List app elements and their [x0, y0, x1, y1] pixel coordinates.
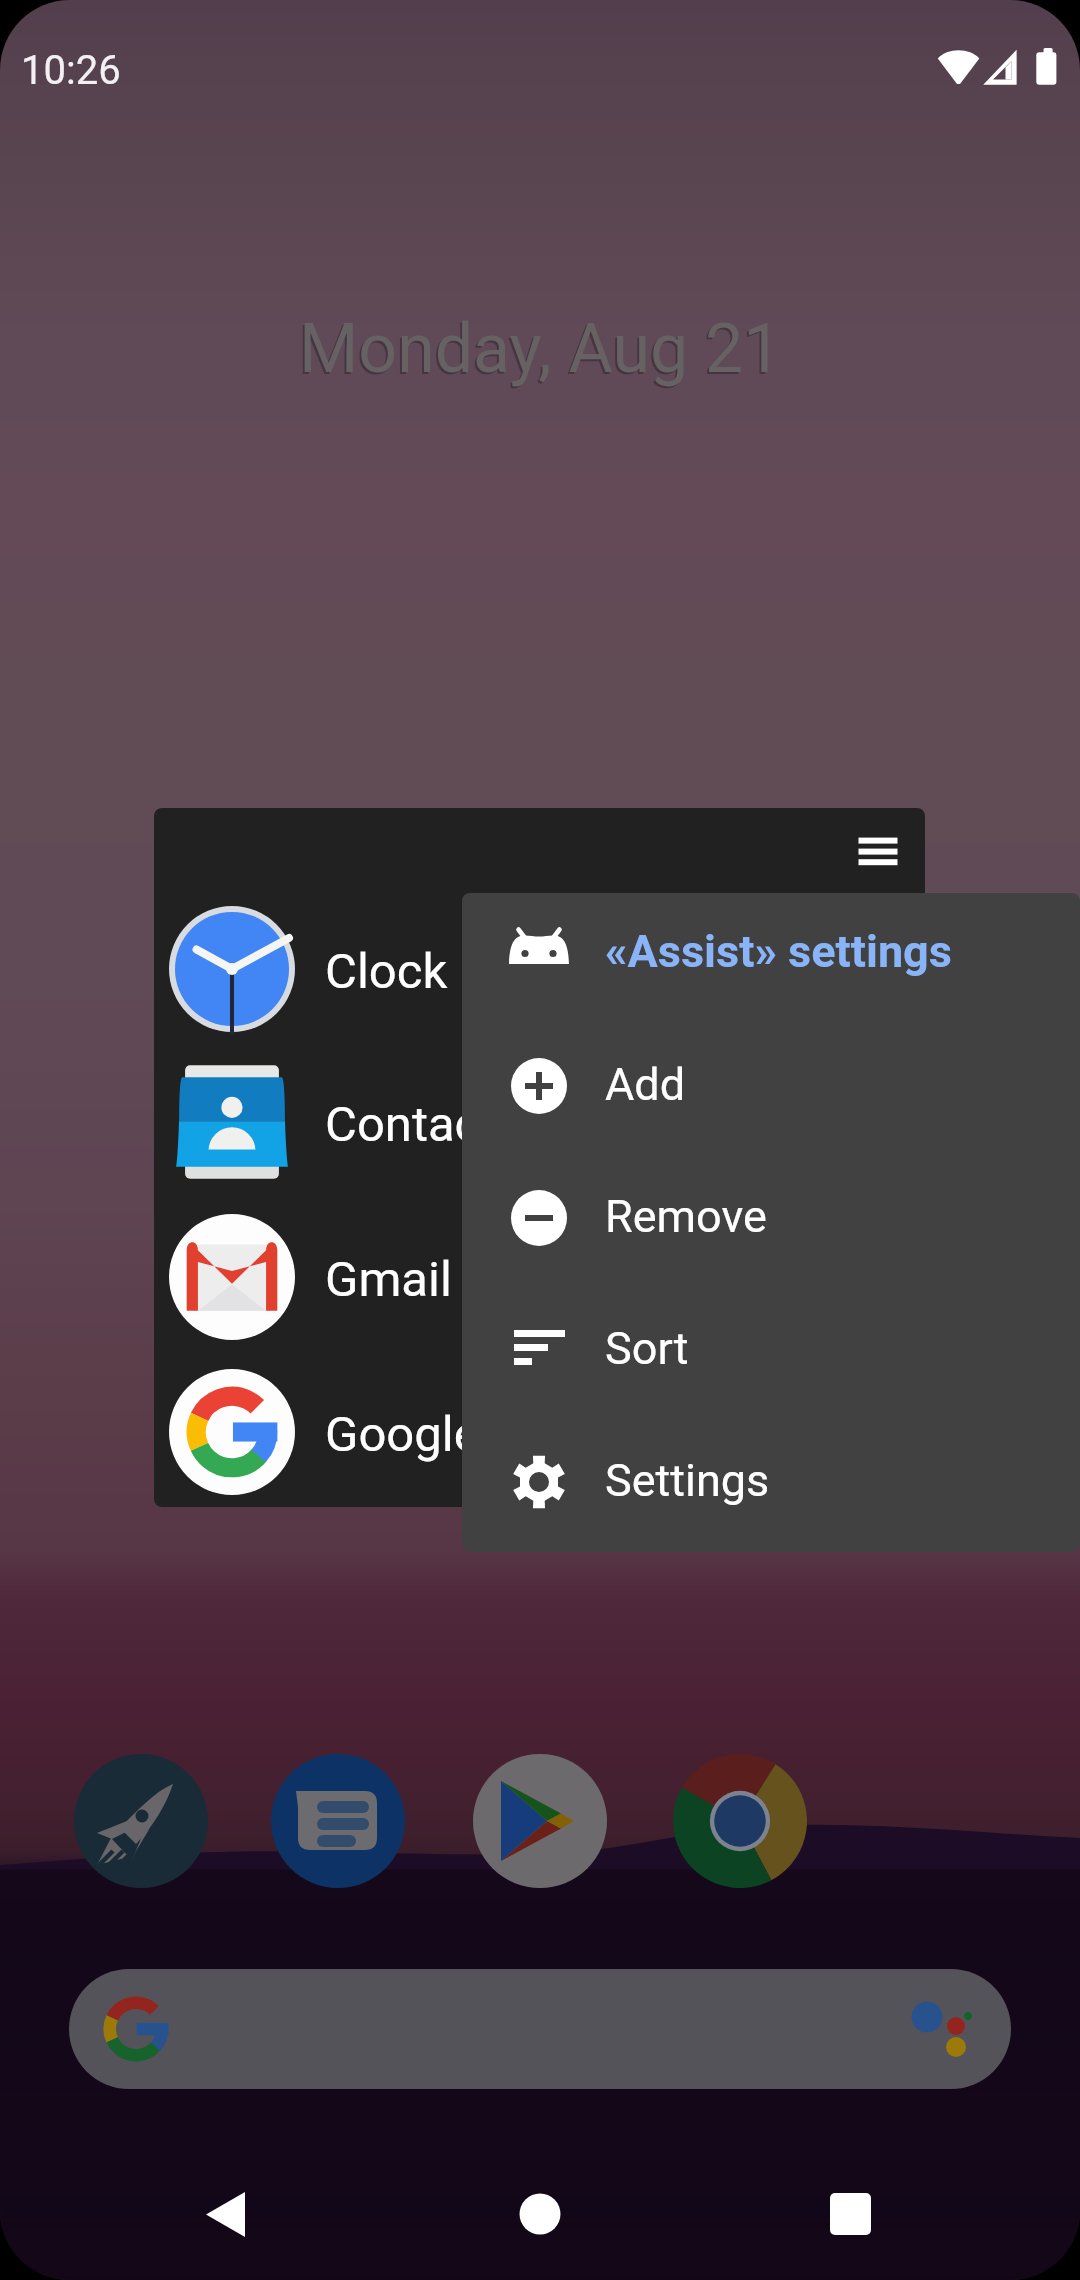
button[interactable]: Contacts [154, 1045, 925, 1199]
staticText: Contacts [325, 1096, 522, 1153]
button[interactable]: Messages [271, 1754, 405, 1888]
staticText: Settings [605, 1454, 770, 1507]
staticText: Add [605, 1058, 686, 1111]
button[interactable]: Back [186, 2174, 266, 2254]
staticText: Monday, Aug 21 [299, 309, 782, 389]
staticText: Gmail [325, 1251, 452, 1308]
staticText: Sort [605, 1322, 689, 1375]
staticText: Google [325, 1406, 480, 1463]
staticText: «Assist» settings [605, 925, 952, 978]
button[interactable]: Gmail [154, 1200, 925, 1354]
staticText: Monday, Aug 21 [297, 311, 780, 391]
button[interactable]: Recents [810, 2174, 890, 2254]
button[interactable]: Add [462, 1020, 1080, 1152]
button[interactable]: Google [154, 1355, 925, 1507]
button[interactable]: Play Store [473, 1754, 607, 1888]
button[interactable]: «Assist» settings [462, 893, 1080, 1019]
button[interactable] [69, 1969, 1011, 2089]
staticText: Clock [325, 943, 448, 1000]
button[interactable]: Menu [838, 820, 925, 910]
button[interactable]: Remove [462, 1152, 1080, 1284]
button[interactable]: Sort [462, 1284, 1080, 1416]
staticText: 10:26 [21, 47, 121, 94]
button[interactable]: Rocket [74, 1754, 208, 1888]
button[interactable]: Home [500, 2174, 580, 2254]
staticText: Remove [605, 1190, 767, 1243]
button[interactable]: Clock [154, 892, 925, 1046]
button[interactable]: Chrome [673, 1754, 807, 1888]
button[interactable]: Settings [462, 1416, 1080, 1548]
